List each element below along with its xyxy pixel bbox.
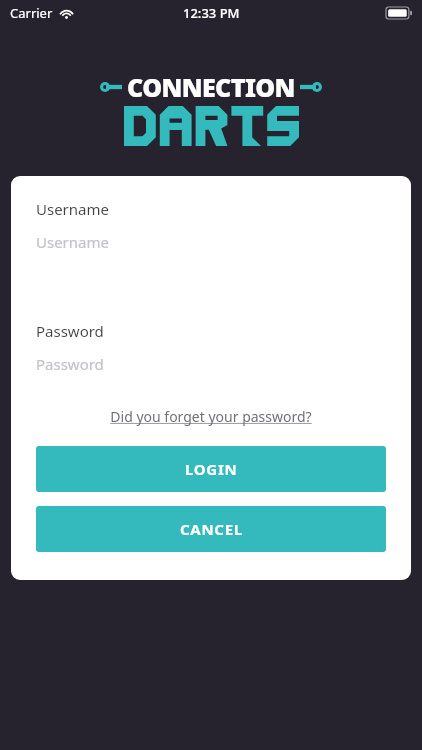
staticText: Password bbox=[36, 321, 104, 341]
staticText: Password bbox=[36, 354, 104, 374]
button[interactable]: LOGIN bbox=[36, 446, 386, 492]
button[interactable]: Password bbox=[11, 321, 411, 374]
staticText: CANCEL bbox=[180, 519, 243, 539]
staticText: 12:33 PM bbox=[183, 4, 240, 22]
button[interactable]: Username bbox=[11, 199, 411, 252]
staticText: Username bbox=[36, 232, 109, 252]
button[interactable]: Did you forget your password? bbox=[104, 404, 318, 429]
staticText: LOGIN bbox=[185, 459, 238, 479]
staticText: Carrier bbox=[10, 4, 53, 22]
staticText: Username bbox=[36, 199, 109, 219]
staticText: CONNECTION bbox=[127, 70, 295, 104]
button[interactable]: CANCEL bbox=[36, 506, 386, 552]
staticText: Did you forget your password? bbox=[110, 407, 312, 426]
